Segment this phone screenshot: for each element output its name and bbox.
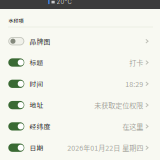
button[interactable]: 标题 xyxy=(0,52,160,73)
staticText: 18:29 xyxy=(125,79,143,89)
button[interactable]: 时间 xyxy=(0,73,160,94)
button[interactable]: 经纬度 xyxy=(0,116,160,137)
staticText: 2026年01月22日 星期四 xyxy=(67,143,143,153)
button[interactable]: 日期 xyxy=(0,137,160,158)
staticText: 地址 xyxy=(29,100,43,110)
staticText: 水印项 xyxy=(8,17,23,24)
staticText: 未获取定位权限 xyxy=(94,100,143,110)
staticText: 日期 xyxy=(29,143,43,153)
button[interactable]: 地址 xyxy=(0,94,160,116)
staticText: 20°C xyxy=(56,0,71,5)
staticText: 打卡 xyxy=(129,57,143,68)
button[interactable]: 品牌图 xyxy=(0,31,160,52)
staticText: 时间 xyxy=(29,79,43,89)
staticText: 标题 xyxy=(29,58,43,67)
staticText: 品牌图 xyxy=(29,36,50,46)
staticText: 在这里 xyxy=(122,121,143,131)
staticText: 经纬度 xyxy=(29,121,50,131)
